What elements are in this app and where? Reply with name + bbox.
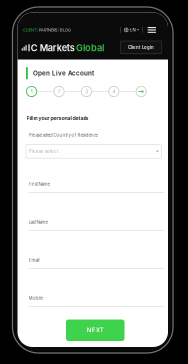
staticText: Please select: [29, 148, 59, 154]
staticText: 2: [57, 88, 60, 95]
staticText: 1: [31, 88, 33, 95]
button[interactable]: BLOG: [60, 28, 71, 32]
button[interactable]: PARTNERS: [39, 28, 57, 32]
button[interactable]: Please select: [26, 144, 161, 158]
button[interactable]: EN: [124, 27, 139, 33]
button[interactable]: IC Markets: [22, 42, 104, 53]
button[interactable]: NEXT: [66, 319, 124, 341]
staticText: |: [142, 27, 144, 33]
button[interactable]: Client Login: [120, 41, 162, 54]
staticText: BLOG: [60, 28, 71, 32]
staticText: |: [36, 28, 39, 32]
staticText: 3: [85, 88, 88, 95]
staticText: 4: [112, 88, 115, 95]
staticText: Last Name: [29, 219, 49, 225]
staticText: Global: [76, 42, 104, 53]
staticText: Email: [29, 257, 40, 263]
staticText: IC Markets: [28, 42, 75, 53]
staticText: Please select Country of Residence: [29, 132, 98, 138]
staticText: CLIENT: [23, 28, 36, 32]
staticText: NEXT: [87, 326, 104, 334]
staticText: Mobile: [29, 295, 44, 301]
button[interactable]: CLIENT: [23, 28, 36, 32]
staticText: Fill in your personal details: [26, 115, 88, 121]
staticText: |: [57, 28, 60, 32]
staticText: PARTNERS: [39, 28, 57, 32]
button[interactable]: Menu: [148, 27, 156, 33]
staticText: EN: [130, 27, 136, 33]
staticText: Open Live Account: [33, 69, 94, 77]
staticText: |: [119, 27, 121, 33]
staticText: Client Login: [128, 45, 154, 50]
staticText: First Name: [29, 181, 51, 187]
